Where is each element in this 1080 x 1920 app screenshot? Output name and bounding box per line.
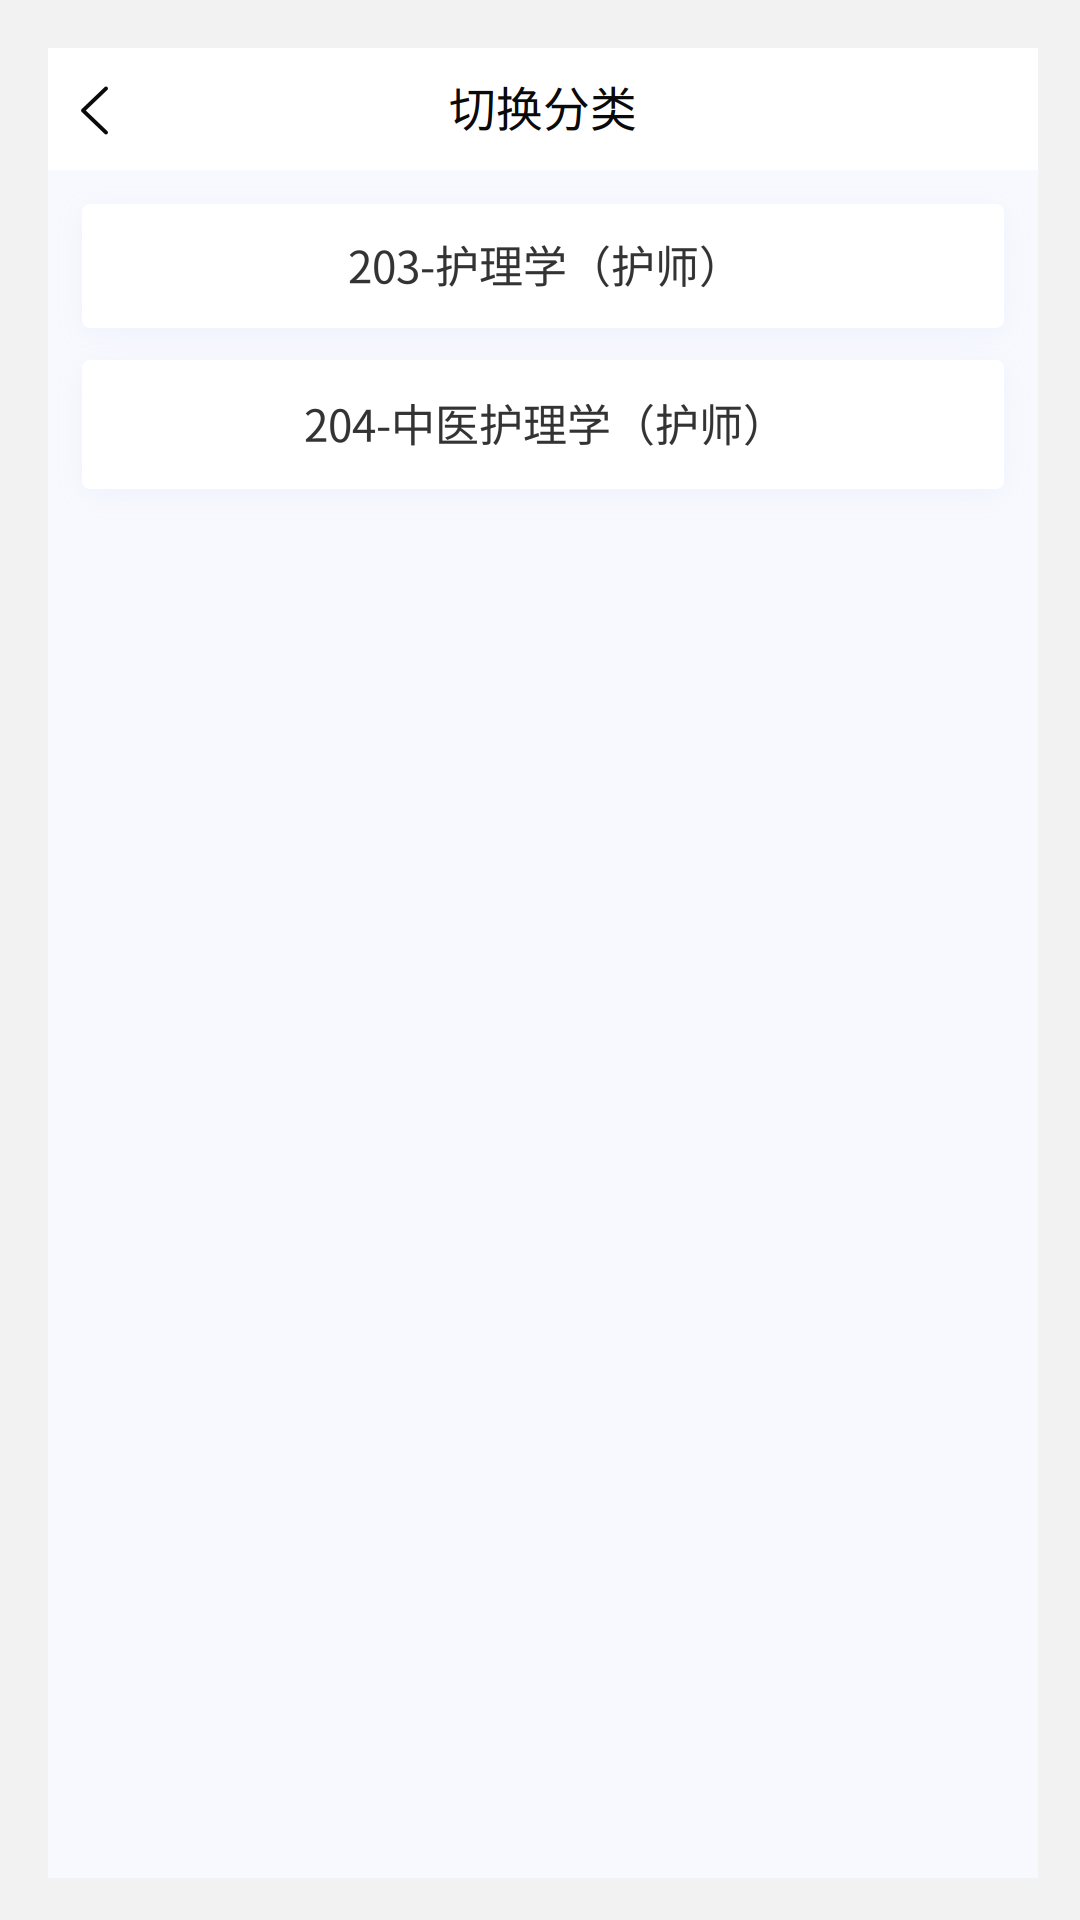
- staticText: 204-中医护理学（护师）: [304, 391, 787, 454]
- button[interactable]: 203-护理学（护师）: [82, 204, 1004, 328]
- staticText: 203-护理学（护师）: [348, 232, 743, 296]
- staticText: 切换分类: [449, 72, 637, 140]
- button[interactable]: Back: [48, 48, 144, 170]
- button[interactable]: 204-中医护理学（护师）: [82, 360, 1004, 489]
